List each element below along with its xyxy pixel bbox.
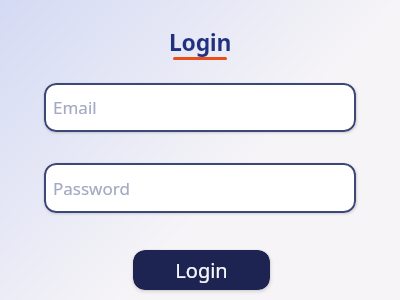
button[interactable]: Login <box>169 26 232 57</box>
button[interactable]: Email <box>44 83 356 132</box>
staticText: Password <box>53 177 130 200</box>
button[interactable]: Login <box>133 250 270 290</box>
staticText: Email <box>53 96 97 119</box>
button[interactable]: Password <box>44 163 356 213</box>
staticText: Login <box>175 257 228 284</box>
staticText: Login <box>169 26 232 57</box>
